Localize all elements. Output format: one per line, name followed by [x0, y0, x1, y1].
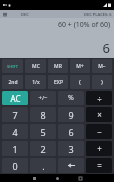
button[interactable]: Recents [76, 174, 84, 182]
button[interactable]: 1 [2, 141, 28, 156]
button[interactable]: = [86, 158, 112, 173]
staticText: 60 + (10% of 60) [58, 20, 110, 30]
staticText: 8 [40, 109, 46, 121]
button[interactable]: M+ [70, 59, 90, 73]
staticText: % [68, 93, 74, 103]
staticText: ÷ [97, 93, 102, 104]
staticText: ( [79, 78, 81, 86]
button[interactable]: AC [2, 91, 28, 105]
button[interactable]: Backspace [58, 158, 84, 173]
staticText: = [97, 160, 102, 171]
staticText: × [97, 109, 102, 120]
staticText: M− [98, 63, 106, 70]
staticText: M+ [76, 63, 84, 70]
button[interactable]: MC [25, 59, 46, 73]
button[interactable]: − [86, 124, 112, 139]
staticText: +/− [38, 94, 48, 102]
button[interactable]: 3 [58, 141, 84, 156]
button[interactable]: MR [48, 59, 68, 73]
staticText: AC [10, 93, 21, 104]
staticText: 2 [40, 143, 46, 155]
button[interactable]: 1/x [25, 75, 46, 89]
staticText: 2nd [8, 79, 18, 86]
button[interactable]: + [86, 141, 112, 156]
button[interactable]: . [30, 158, 56, 173]
staticText: EXP [54, 79, 63, 86]
staticText: 1/x [32, 79, 40, 86]
button[interactable]: 6 [58, 124, 84, 139]
button[interactable]: SHIFT [2, 59, 23, 73]
button[interactable]: Home [53, 174, 61, 182]
staticText: 6 [102, 39, 110, 57]
button[interactable]: 9 [58, 107, 84, 122]
staticText: . [42, 160, 45, 172]
button[interactable]: Back [30, 174, 38, 182]
staticText: 4 [12, 126, 18, 138]
button[interactable]: 4 [2, 124, 28, 139]
button[interactable]: +/− [30, 91, 56, 105]
button[interactable]: × [86, 107, 112, 122]
staticText: ) [101, 78, 103, 86]
button[interactable]: ) [92, 75, 112, 89]
button[interactable]: 0 [2, 158, 28, 173]
staticText: 9 [68, 109, 74, 121]
button[interactable]: DEC [21, 12, 29, 17]
button[interactable]: % [58, 91, 84, 105]
staticText: 5 [40, 126, 46, 138]
staticText: 3 [68, 143, 74, 155]
button[interactable]: DEC PLACES: 6 [84, 12, 112, 17]
staticText: DEC [21, 12, 29, 17]
button[interactable]: ( [70, 75, 90, 89]
staticText: SHIFT [7, 64, 18, 69]
staticText: DEC PLACES: 6 [84, 12, 112, 17]
button[interactable]: M− [92, 59, 112, 73]
button[interactable]: 2 [30, 141, 56, 156]
button[interactable]: 7 [2, 107, 28, 122]
staticText: MC [32, 63, 40, 70]
staticText: 1 [12, 143, 18, 155]
staticText: + [97, 143, 102, 154]
button[interactable]: Menu [2, 12, 7, 17]
button[interactable]: EXP [48, 75, 68, 89]
staticText: 0 [12, 160, 18, 172]
staticText: MR [54, 63, 62, 70]
staticText: 6 [68, 126, 74, 138]
staticText: 7 [12, 109, 18, 121]
button[interactable]: 8 [30, 107, 56, 122]
button[interactable]: 2nd [2, 75, 23, 89]
button[interactable]: ÷ [86, 91, 112, 105]
button[interactable]: 5 [30, 124, 56, 139]
staticText: − [97, 126, 102, 137]
